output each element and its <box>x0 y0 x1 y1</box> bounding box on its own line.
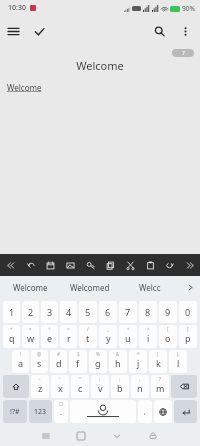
staticText: !?# <box>10 407 20 417</box>
button[interactable]: × <box>22 325 39 348</box>
staticText: s <box>37 357 42 369</box>
staticText: q <box>9 332 15 344</box>
button[interactable]: Menu <box>0 18 26 44</box>
button[interactable]: 6 <box>99 301 117 323</box>
staticText: g <box>95 357 101 369</box>
button[interactable]: : <box>91 375 109 398</box>
button[interactable]: Paste <box>141 256 159 274</box>
button[interactable]: , <box>131 375 149 398</box>
button[interactable]: < <box>119 325 137 348</box>
staticText: 2 <box>28 306 34 318</box>
button[interactable]: ( <box>149 350 167 373</box>
button[interactable]: Search <box>146 18 172 44</box>
button[interactable]: Welcomed <box>60 276 120 298</box>
button[interactable]: Undo <box>22 256 40 274</box>
staticText: f <box>76 357 80 369</box>
button[interactable]: Redo <box>160 256 178 274</box>
button[interactable]: ! <box>12 350 29 373</box>
button[interactable]: Previous <box>2 256 20 274</box>
button[interactable]: = <box>60 325 77 348</box>
button[interactable]: _ <box>99 325 117 348</box>
button[interactable]: Image <box>61 256 79 274</box>
button[interactable]: [ <box>159 325 177 348</box>
button[interactable]: 8 <box>139 301 157 323</box>
button[interactable]: " <box>71 375 89 398</box>
button[interactable]: Backspace <box>171 375 197 398</box>
staticText: 90% <box>182 4 195 13</box>
staticText: 7 <box>125 306 131 318</box>
staticText: t <box>86 332 90 344</box>
button[interactable]: + <box>3 325 20 348</box>
staticText: ? <box>159 376 161 382</box>
staticText: 123 <box>34 407 47 417</box>
button[interactable]: Shift <box>3 375 29 398</box>
staticText: r <box>67 332 71 344</box>
staticText: × <box>29 326 32 332</box>
staticText: 0 <box>185 306 191 318</box>
button[interactable]: !?# <box>3 400 27 423</box>
button[interactable]: Translate <box>81 256 99 274</box>
staticText: = <box>67 326 70 332</box>
staticText: u <box>125 332 131 344</box>
button[interactable]: Change language <box>154 400 172 423</box>
staticText: w <box>27 332 35 344</box>
button[interactable]: 0 <box>179 301 197 323</box>
button[interactable]: 9 <box>159 301 177 323</box>
button[interactable]: Calendar <box>41 256 59 274</box>
button[interactable]: Cut <box>121 256 139 274</box>
staticText: Welcc <box>139 282 161 293</box>
button[interactable]: 2 <box>22 301 39 323</box>
staticText: m <box>156 382 165 394</box>
button[interactable]: Switch input method <box>135 426 171 446</box>
button[interactable]: □ <box>54 400 68 423</box>
button[interactable]: ) <box>169 350 187 373</box>
button[interactable]: Counter <box>172 49 194 57</box>
button[interactable]: Copy <box>101 256 119 274</box>
staticText: " <box>79 376 81 382</box>
staticText: □ <box>59 401 64 406</box>
button[interactable]: - <box>31 375 49 398</box>
staticText: # <box>57 351 60 357</box>
button[interactable]: Space <box>70 400 136 423</box>
button[interactable]: # <box>50 350 67 373</box>
button[interactable]: Done <box>26 18 52 44</box>
button[interactable]: More suggestions <box>180 276 200 298</box>
button[interactable]: 7 <box>119 301 137 323</box>
button[interactable]: ; <box>111 375 129 398</box>
staticText: < <box>127 326 130 332</box>
button[interactable]: 4 <box>60 301 77 323</box>
staticText: k <box>156 357 161 369</box>
button[interactable]: More options <box>172 18 198 44</box>
button[interactable]: ] <box>179 325 197 348</box>
button[interactable]: Home <box>63 426 99 446</box>
button[interactable]: @ <box>31 350 48 373</box>
button[interactable]: ' <box>51 375 69 398</box>
staticText: 3 <box>47 306 53 318</box>
staticText: , <box>139 376 141 382</box>
button[interactable]: 1 <box>3 301 20 323</box>
button[interactable]: Welcc <box>120 276 180 298</box>
button[interactable]: , <box>138 400 152 423</box>
staticText: > <box>147 326 150 332</box>
button[interactable]: * <box>129 350 147 373</box>
button[interactable]: Enter <box>174 400 197 423</box>
button[interactable]: > <box>139 325 157 348</box>
button[interactable]: $ <box>69 350 87 373</box>
button[interactable]: / <box>79 325 97 348</box>
button[interactable]: % <box>89 350 107 373</box>
staticText: 5 <box>85 306 91 318</box>
button[interactable]: 123 <box>29 400 52 423</box>
button[interactable]: ÷ <box>41 325 58 348</box>
button[interactable]: 3 <box>41 301 58 323</box>
button[interactable]: 5 <box>79 301 97 323</box>
button[interactable]: ? <box>151 375 169 398</box>
staticText: ( <box>157 351 159 357</box>
staticText: * <box>137 351 140 357</box>
button[interactable]: & <box>109 350 127 373</box>
button[interactable]: Hide keyboard <box>99 426 135 446</box>
button[interactable]: Recents <box>28 426 63 446</box>
staticText: & <box>116 351 120 357</box>
button[interactable]: Next <box>180 256 198 274</box>
staticText: b <box>117 382 123 394</box>
button[interactable]: Welcome <box>0 276 60 298</box>
